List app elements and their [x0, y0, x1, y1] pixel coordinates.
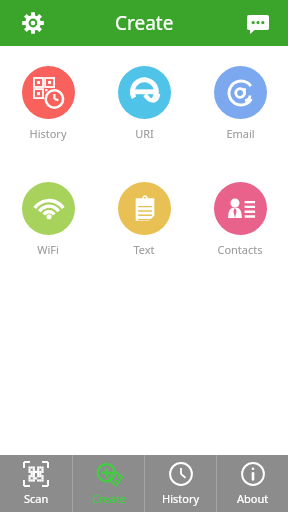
button[interactable]: Create: [73, 455, 144, 512]
button[interactable]: Email: [192, 66, 288, 141]
staticText: WiFi: [37, 242, 59, 257]
staticText: About: [237, 491, 269, 506]
button[interactable]: Scan: [0, 455, 72, 512]
button[interactable]: URI: [96, 66, 192, 141]
button[interactable]: About: [217, 455, 288, 512]
button[interactable]: WiFi: [0, 182, 96, 257]
staticText: Create: [92, 491, 126, 506]
button[interactable]: Text: [96, 182, 192, 257]
staticText: Create: [115, 10, 174, 36]
button[interactable]: History: [0, 66, 96, 141]
staticText: History: [29, 126, 67, 141]
staticText: URI: [135, 126, 154, 141]
staticText: Email: [226, 126, 255, 141]
button[interactable]: Settings: [13, 3, 53, 43]
button[interactable]: Messages: [238, 3, 278, 43]
button[interactable]: Contacts: [192, 182, 288, 257]
button[interactable]: History: [145, 455, 216, 512]
staticText: History: [162, 491, 200, 506]
staticText: Text: [133, 242, 155, 257]
staticText: Scan: [24, 491, 49, 506]
staticText: Contacts: [217, 242, 263, 257]
